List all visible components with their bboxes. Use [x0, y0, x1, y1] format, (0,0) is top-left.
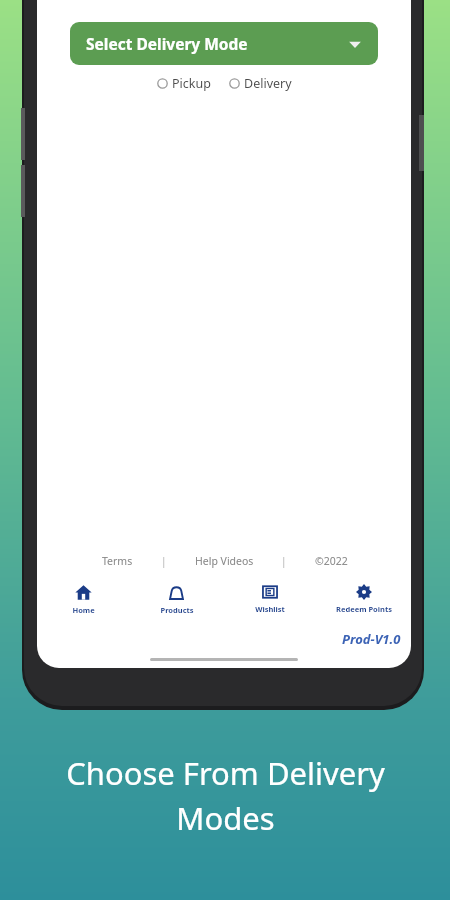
staticText: Home	[72, 605, 95, 615]
staticText: Help Videos	[195, 554, 254, 568]
staticText: Products	[160, 605, 194, 615]
staticText: Prod-V1.0	[342, 630, 401, 648]
staticText: |	[281, 554, 287, 568]
other: Products	[168, 584, 185, 601]
staticText: Select Delivery Mode	[86, 33, 248, 54]
staticText: Pickup	[172, 75, 211, 92]
button[interactable]: Pickup	[155, 73, 213, 94]
button[interactable]: Help Videos	[167, 550, 281, 572]
staticText: Delivery	[244, 75, 292, 92]
staticText: |	[161, 554, 167, 568]
button[interactable]: Terms	[73, 550, 161, 572]
other: Home	[75, 584, 92, 601]
button[interactable]: ©2022	[287, 550, 375, 572]
staticText: Redeem Points	[336, 604, 392, 614]
staticText: Wishlist	[255, 604, 285, 614]
other: Wishlist	[262, 584, 278, 600]
staticText: Choose From Delivery Modes	[66, 752, 385, 839]
staticText: Terms	[102, 554, 133, 568]
button[interactable]: Delivery	[227, 73, 294, 94]
button[interactable]: Redeem Points	[317, 582, 411, 614]
button[interactable]: Wishlist	[223, 582, 317, 614]
button[interactable]: Products	[130, 582, 223, 615]
button[interactable]: Home	[37, 582, 130, 615]
other: Redeem Points	[356, 584, 372, 600]
staticText: ©2022	[315, 554, 348, 568]
button[interactable]: Select Delivery Mode	[70, 22, 378, 65]
